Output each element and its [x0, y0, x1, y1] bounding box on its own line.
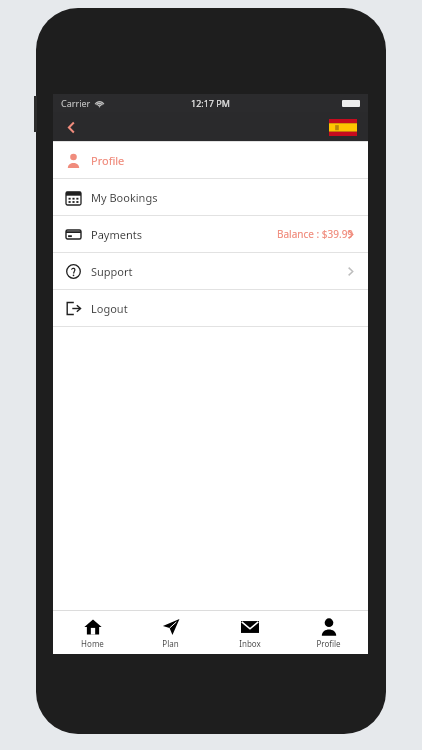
- staticText: Support: [91, 264, 133, 279]
- button[interactable]: Language Spain: [326, 116, 360, 138]
- button[interactable]: Profile: [289, 611, 368, 654]
- button[interactable]: My Bookings: [53, 179, 368, 216]
- button[interactable]: Payments: [53, 216, 368, 253]
- staticText: Logout: [91, 301, 128, 316]
- button[interactable]: Plan: [131, 611, 210, 654]
- staticText: Profile: [316, 638, 341, 649]
- button[interactable]: Inbox: [210, 611, 289, 654]
- button[interactable]: Support: [53, 253, 368, 290]
- button[interactable]: Profile: [53, 142, 368, 179]
- button[interactable]: Home: [53, 611, 131, 654]
- staticText: Inbox: [239, 638, 261, 649]
- staticText: Home: [81, 638, 104, 649]
- staticText: Plan: [162, 638, 179, 649]
- staticText: Carrier: [61, 97, 91, 109]
- staticText: Payments: [91, 227, 142, 242]
- staticText: My Bookings: [91, 190, 158, 205]
- button[interactable]: Logout: [53, 290, 368, 327]
- staticText: Profile: [91, 153, 125, 168]
- staticText: 12:17 PM: [191, 97, 230, 109]
- staticText: Balance : $39.99: [277, 227, 354, 241]
- button[interactable]: Back: [58, 114, 84, 140]
